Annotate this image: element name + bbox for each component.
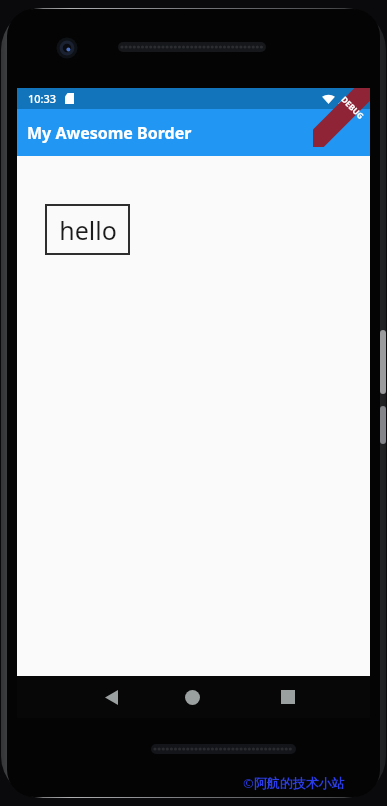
button[interactable]: Back	[77, 676, 145, 718]
button[interactable]: Home	[158, 676, 226, 718]
staticText: hello	[59, 213, 117, 247]
staticText: 10:33	[28, 91, 57, 106]
staticText: My Awesome Border	[27, 122, 192, 144]
button[interactable]: hello	[45, 204, 130, 255]
staticText: DEBUG	[339, 94, 367, 121]
staticText: ©阿航的技术小站	[243, 774, 345, 792]
button[interactable]: Recent apps	[254, 676, 322, 718]
